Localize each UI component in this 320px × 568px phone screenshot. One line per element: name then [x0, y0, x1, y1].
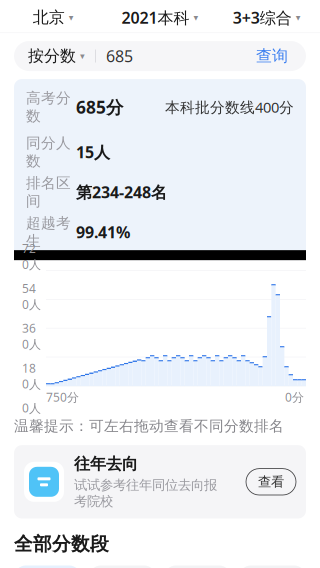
- staticText: 试试参考往年同位去向报考院校: [74, 477, 217, 510]
- staticText: 查询: [256, 46, 288, 66]
- staticText: 0分: [285, 389, 304, 405]
- staticText: ▾: [193, 12, 198, 23]
- staticText: 本科批分数线400分: [165, 97, 294, 117]
- staticText: 按分数: [28, 46, 76, 66]
- staticText: 排名区间: [26, 174, 71, 210]
- staticText: ▾: [296, 12, 301, 23]
- button[interactable]: 599-500: [89, 565, 156, 568]
- button[interactable]: 399-0: [239, 565, 306, 568]
- staticText: 全部分数段: [14, 532, 109, 555]
- staticText: 685分: [76, 95, 123, 118]
- staticText: ▾: [80, 51, 85, 61]
- button[interactable]: 750-600: [14, 565, 81, 568]
- staticText: 180人: [22, 360, 41, 392]
- staticText: ▾: [69, 12, 74, 23]
- button[interactable]: 北京: [0, 2, 107, 32]
- staticText: 685: [106, 45, 133, 67]
- staticText: 3+3综合: [233, 7, 292, 28]
- staticText: 超越考生: [26, 214, 71, 250]
- staticText: 99.41%: [76, 221, 130, 243]
- staticText: 360人: [22, 320, 41, 352]
- staticText: 720人: [22, 240, 41, 272]
- button[interactable]: 按分数: [28, 46, 85, 66]
- button[interactable]: 499-400: [164, 565, 231, 568]
- staticText: 往年去向: [74, 454, 138, 474]
- button[interactable]: 往年去向: [14, 445, 306, 518]
- staticText: 540人: [22, 280, 41, 312]
- button[interactable]: 查询: [252, 42, 292, 70]
- staticText: 温馨提示：可左右拖动查看不同分数排名: [14, 417, 284, 435]
- staticText: 北京: [33, 8, 65, 27]
- staticText: 同分人数: [26, 134, 71, 170]
- button[interactable]: 3+3综合: [213, 2, 320, 32]
- staticText: 查看: [258, 474, 284, 490]
- staticText: 0人: [22, 400, 41, 416]
- staticText: 750分: [46, 389, 79, 405]
- staticText: 第234-248名: [76, 181, 167, 203]
- staticText: 2021本科: [121, 7, 189, 28]
- button[interactable]: 2021本科: [107, 2, 213, 32]
- staticText: 高考分数: [26, 89, 71, 125]
- staticText: 15人: [76, 141, 110, 163]
